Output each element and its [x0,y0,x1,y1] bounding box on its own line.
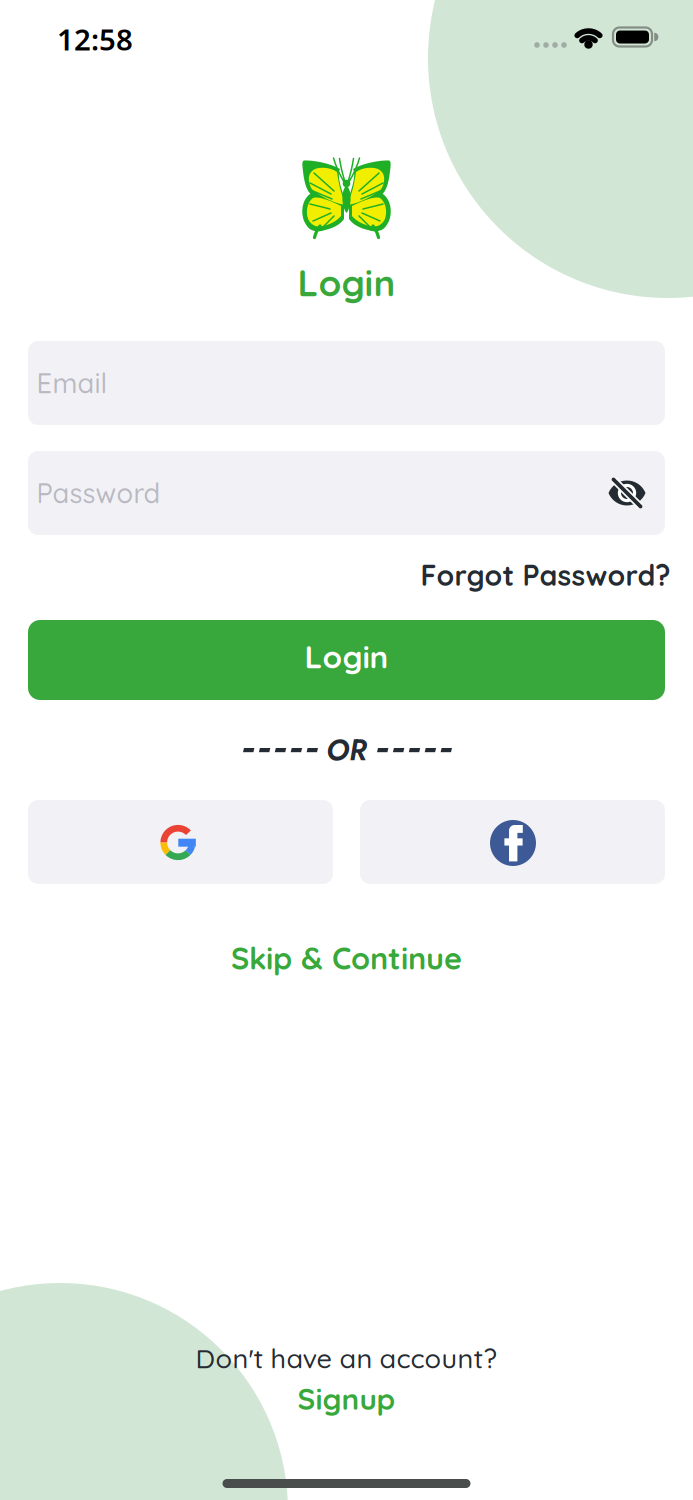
button[interactable]: Forgot Password? [420,557,670,593]
staticText: Login [297,260,395,305]
staticText: Don't have an account? [195,1341,497,1375]
button[interactable]: Password [28,451,665,535]
button[interactable]: Skip & Continue [231,939,462,977]
button[interactable] [28,800,333,884]
button[interactable]: Email [28,341,665,425]
staticText: OR [326,729,367,771]
staticText: Forgot Password? [420,557,670,593]
button[interactable] [360,800,665,884]
staticText: Skip & Continue [231,939,462,977]
button[interactable]: Login [28,620,665,700]
staticText: Email [36,366,107,400]
button[interactable]: Signup [297,1380,395,1417]
button[interactable] [604,473,650,513]
staticText: Password [36,476,160,510]
staticText: Login [304,637,388,676]
staticText: Signup [297,1380,395,1417]
staticText: 12:58 [57,19,133,58]
